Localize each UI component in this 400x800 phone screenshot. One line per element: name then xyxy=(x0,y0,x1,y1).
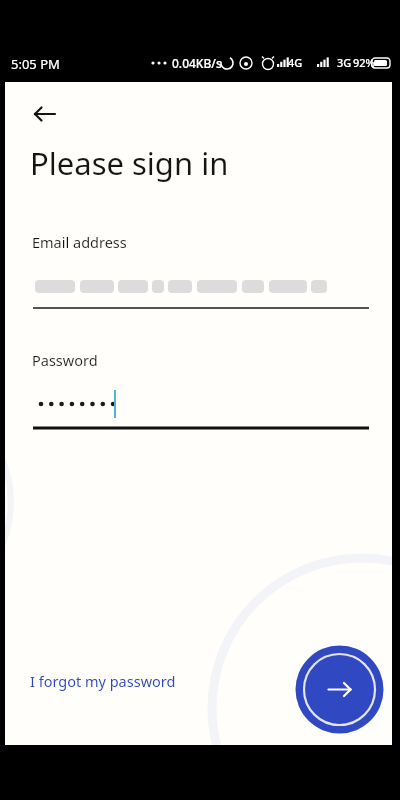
staticText: Please sign in xyxy=(30,142,229,184)
button[interactable]: I forgot my password xyxy=(23,664,203,698)
button[interactable]: Email address xyxy=(25,232,372,314)
staticText: I forgot my password xyxy=(30,671,176,691)
staticText: 3G xyxy=(337,55,352,70)
button[interactable]: Password xyxy=(25,350,372,432)
button[interactable]: Continue xyxy=(295,645,384,734)
staticText: 4G xyxy=(288,55,303,70)
staticText: 0.04KB/s xyxy=(172,55,222,71)
staticText: 92% xyxy=(353,55,375,70)
staticText: Password xyxy=(32,350,98,370)
staticText: Email address xyxy=(32,232,127,252)
button[interactable]: Back xyxy=(21,90,69,138)
staticText: 5:05 PM xyxy=(11,55,60,73)
